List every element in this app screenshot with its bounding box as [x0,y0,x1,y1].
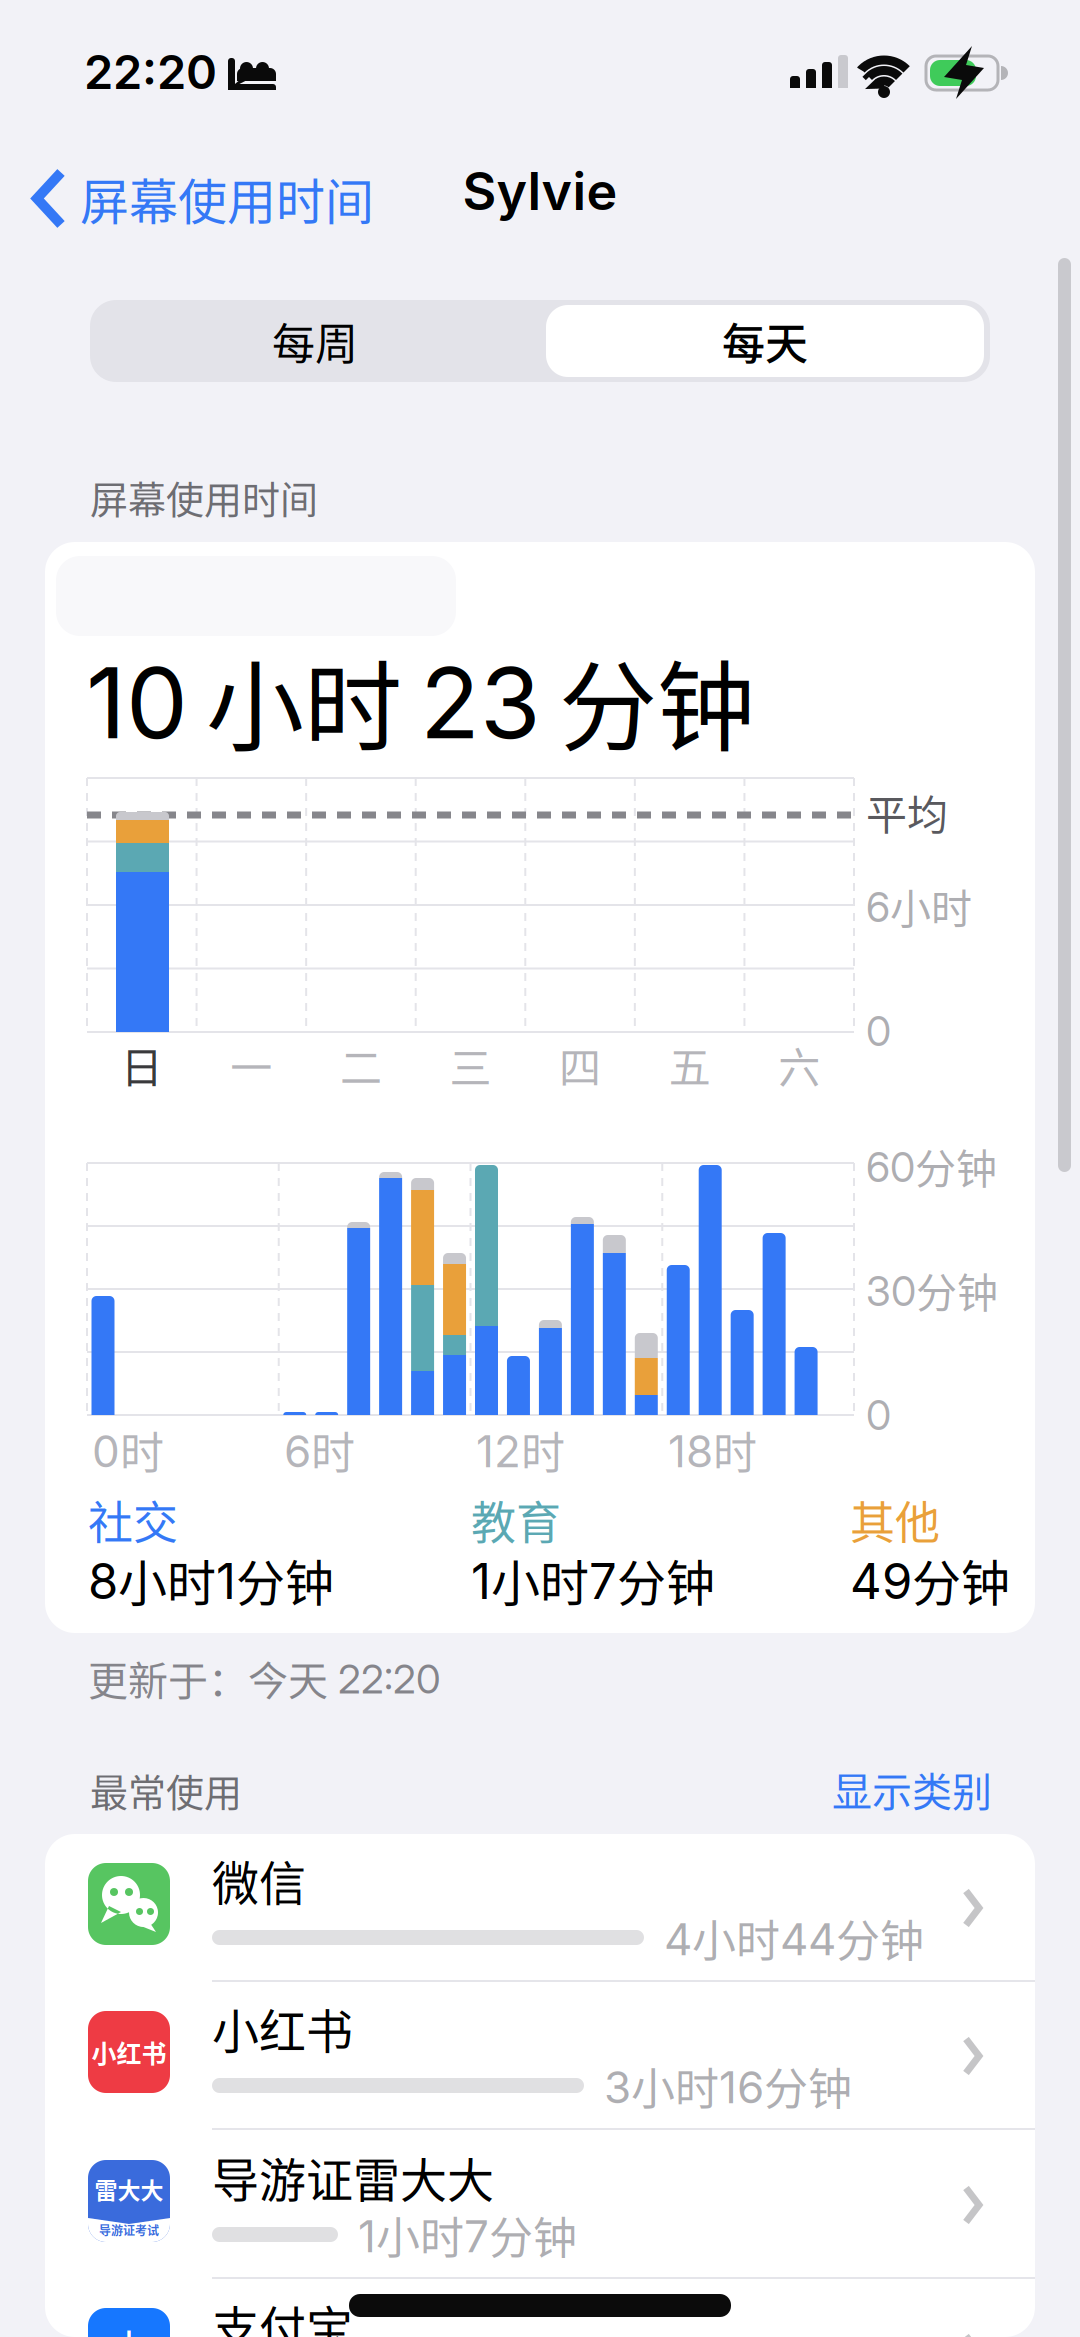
staticText: 每天 [722,310,808,372]
staticText: 二 [340,1035,382,1095]
staticText: 五 [669,1035,711,1095]
staticText: 60分钟 [866,1136,997,1196]
staticText: 屏幕使用时间 [80,163,374,234]
staticText: 8小时1分钟 [88,1544,334,1615]
staticText: 12时 [476,1418,565,1482]
staticText: 10 小时 23 分钟 [86,629,755,771]
staticText: 支 [107,2317,151,2337]
button[interactable]: 每周 [90,300,540,382]
staticText: 小红书 [91,2034,166,2070]
staticText: 一 [230,1035,272,1095]
staticText: 0时 [92,1418,164,1482]
button[interactable]: 支 [45,2279,1035,2337]
button[interactable]: 小红书 [45,1982,1035,2130]
staticText: 1小时7分钟 [471,1544,715,1615]
staticText: 日 [121,1035,163,1095]
staticText: 四 [559,1035,601,1095]
staticText: 1小时7分钟 [358,2203,577,2267]
button[interactable]: 屏幕使用时间 [34,163,374,234]
staticText: 平均 [866,782,948,842]
staticText: 49分钟 [850,1544,1010,1615]
button[interactable]: 雷大大 [45,2131,1035,2279]
staticText: 三 [449,1035,491,1095]
staticText: 30分钟 [866,1260,998,1320]
staticText: 显示类别 [832,1760,992,1818]
staticText: 小红书 [212,1994,353,2062]
staticText: 18时 [668,1418,757,1482]
staticText: 导游证雷大大 [212,2143,494,2211]
staticText: 6小时 [866,876,972,936]
staticText: 4小时44分钟 [664,1906,924,1970]
staticText: 最常使用 [90,1762,242,1817]
staticText: 社交 [88,1487,178,1553]
staticText: 教育 [471,1487,561,1553]
staticText: 导游证考试 [99,2221,159,2239]
staticText: 六 [778,1035,820,1095]
staticText: 雷大大 [94,2172,163,2206]
button[interactable]: 每天 [540,300,990,382]
staticText: 屏幕使用时间 [90,469,318,524]
staticText: 0 [866,1390,891,1440]
staticText: 每周 [272,310,358,372]
staticText: 0 [866,1006,891,1056]
staticText: 其他 [850,1487,940,1553]
button[interactable]: 微信 [45,1834,1035,1982]
staticText: Sylvie [462,159,617,222]
staticText: 微信 [212,1846,306,1914]
staticText: 6时 [284,1418,355,1482]
staticText: 3小时16分钟 [604,2054,852,2118]
staticText: 更新于：今天 22:20 [88,1649,441,1707]
button[interactable]: 显示类别 [752,1763,992,1815]
staticText: 22:20 [84,44,217,100]
staticText: 支付宝 [212,2291,353,2337]
